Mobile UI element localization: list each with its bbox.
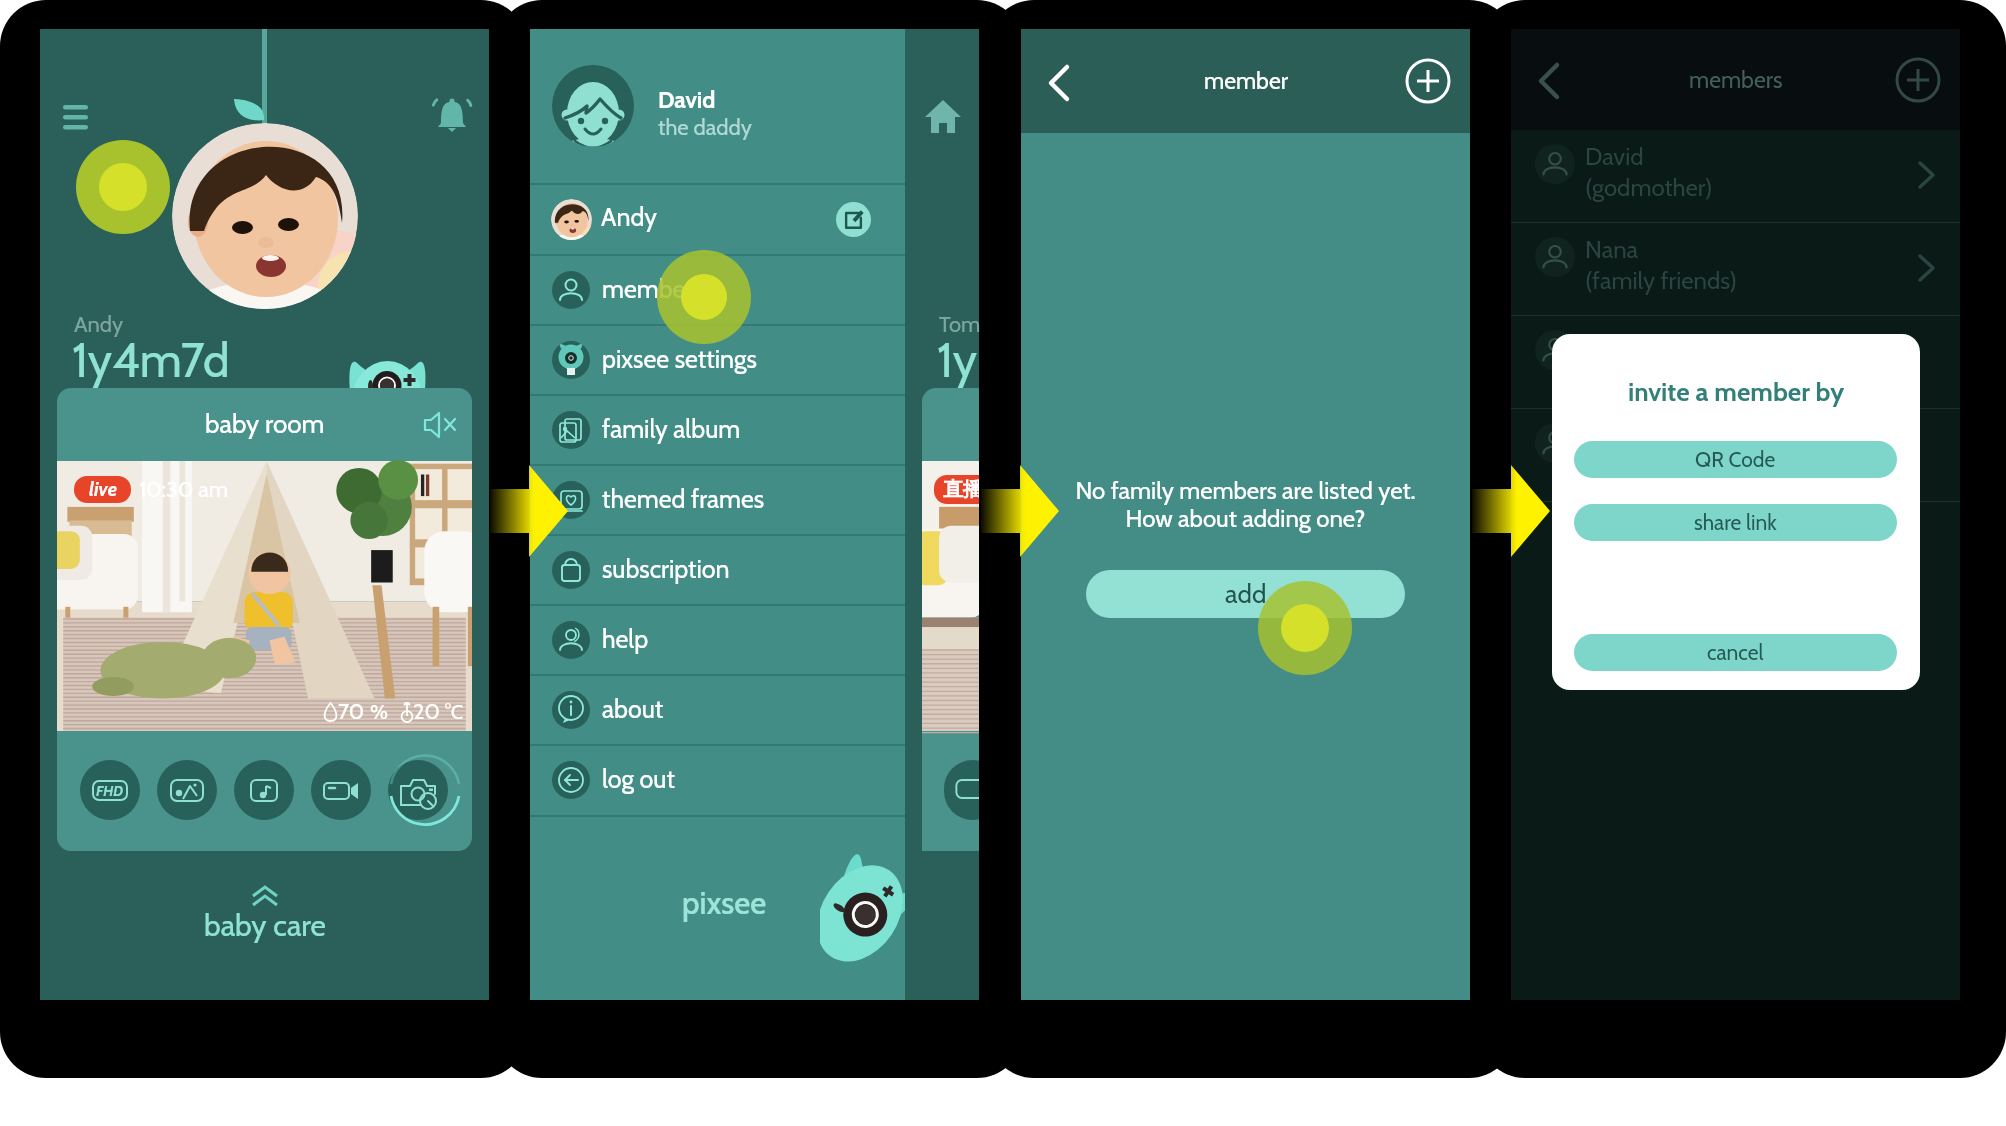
staticText: share link bbox=[1694, 510, 1777, 536]
staticText: about bbox=[602, 694, 664, 724]
button[interactable]: subscription bbox=[530, 535, 905, 605]
staticText: Andy bbox=[601, 202, 657, 232]
button[interactable]: about bbox=[530, 675, 905, 745]
button[interactable]: Mute bbox=[420, 403, 464, 447]
button[interactable] bbox=[1511, 409, 1960, 502]
staticText: cancel bbox=[1707, 640, 1764, 666]
staticText: 1y4m7d bbox=[72, 331, 230, 389]
staticText: member bbox=[602, 274, 694, 304]
staticText: themed frames bbox=[602, 484, 765, 514]
button[interactable]: help bbox=[530, 605, 905, 675]
staticText: help bbox=[602, 624, 649, 654]
button[interactable] bbox=[172, 123, 358, 309]
staticText: David bbox=[658, 86, 716, 114]
staticText: 70 bbox=[338, 698, 370, 725]
staticText: (family friends) bbox=[1585, 266, 1738, 295]
button[interactable]: family album bbox=[530, 395, 905, 465]
staticText: % bbox=[370, 700, 393, 724]
staticText: No family members are listed yet. How ab… bbox=[1021, 476, 1470, 533]
button[interactable]: log out bbox=[530, 745, 905, 815]
staticText: baby room bbox=[205, 408, 325, 440]
button[interactable]: Andy bbox=[530, 184, 905, 255]
button[interactable]: Take photo bbox=[388, 760, 448, 820]
button[interactable]: Pan and tilt bbox=[157, 760, 217, 820]
button[interactable]: QR Code bbox=[1574, 441, 1897, 478]
staticText: °C bbox=[445, 700, 464, 724]
button[interactable]: Record video bbox=[311, 760, 371, 820]
staticText: 1y bbox=[937, 331, 977, 389]
staticText: pixsee bbox=[682, 884, 767, 922]
button[interactable]: add bbox=[1086, 570, 1405, 618]
staticText: subscription bbox=[602, 554, 730, 584]
staticText: (godmother) bbox=[1585, 173, 1713, 202]
staticText: add bbox=[1225, 578, 1267, 610]
staticText: David bbox=[1585, 142, 1644, 171]
button[interactable]: Add member bbox=[1405, 58, 1451, 104]
staticText: pixsee settings bbox=[602, 344, 757, 374]
staticText: members bbox=[1689, 66, 1783, 94]
button[interactable]: Notifications bbox=[426, 89, 478, 141]
button[interactable]: Menu bbox=[53, 91, 105, 143]
staticText: 10:30 am bbox=[139, 476, 229, 503]
staticText: 直播 bbox=[943, 477, 979, 502]
button[interactable]: Lullaby bbox=[234, 760, 294, 820]
button[interactable]: baby care bbox=[165, 881, 365, 961]
button[interactable]: member bbox=[530, 255, 905, 325]
button[interactable]: pixsee settings bbox=[530, 325, 905, 395]
button[interactable]: Resolution FHD bbox=[80, 760, 140, 820]
button[interactable]: themed frames bbox=[530, 465, 905, 535]
button[interactable]: Home bbox=[918, 91, 968, 141]
button[interactable]: share link bbox=[1574, 504, 1897, 541]
staticText: invite a member by bbox=[1628, 376, 1845, 408]
staticText: 20 bbox=[413, 698, 445, 725]
button[interactable]: David bbox=[1511, 130, 1960, 223]
staticText: live bbox=[89, 478, 117, 501]
button[interactable]: cancel bbox=[1574, 634, 1897, 671]
staticText: Tom bbox=[939, 311, 981, 338]
staticText: family album bbox=[602, 414, 741, 444]
button[interactable]: Back bbox=[1527, 57, 1573, 103]
staticText: the daddy bbox=[658, 114, 752, 141]
staticText: FHD bbox=[96, 782, 124, 799]
button[interactable]: Edit bbox=[836, 202, 871, 237]
staticText: log out bbox=[602, 764, 675, 794]
staticText: QR Code bbox=[1695, 447, 1776, 473]
staticText: baby care bbox=[204, 907, 326, 943]
staticText: Nana bbox=[1585, 235, 1639, 264]
button[interactable]: Add member bbox=[1895, 57, 1941, 103]
button[interactable]: Back bbox=[1037, 59, 1083, 105]
staticText: Andy bbox=[74, 311, 124, 338]
staticText: member bbox=[1204, 67, 1288, 95]
button[interactable] bbox=[1511, 316, 1960, 409]
button[interactable]: Nana bbox=[1511, 223, 1960, 316]
